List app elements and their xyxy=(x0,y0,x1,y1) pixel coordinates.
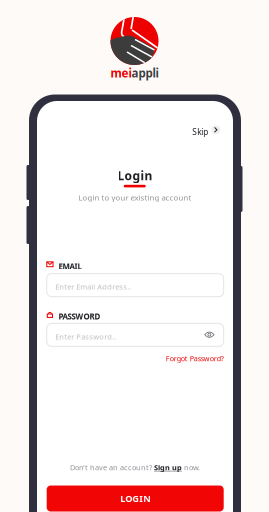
staticText: now. xyxy=(182,462,200,472)
staticText: appli xyxy=(131,65,158,81)
staticText: EMAIL xyxy=(58,261,81,272)
staticText: Sign up xyxy=(154,462,182,472)
button[interactable]: Sign up xyxy=(154,462,182,472)
staticText: Enter Password.. xyxy=(55,331,116,342)
staticText: mei xyxy=(110,65,131,81)
staticText: LOGIN xyxy=(120,492,150,505)
staticText: Login xyxy=(117,167,152,184)
button[interactable]: Skip xyxy=(191,124,220,135)
staticText: Don't have an account? xyxy=(70,462,154,472)
button[interactable]: LOGIN xyxy=(47,485,224,511)
staticText: Forgot Password? xyxy=(166,354,224,363)
button[interactable]: Forgot Password? xyxy=(37,354,224,363)
staticText: Skip xyxy=(192,126,208,137)
staticText: PASSWORD xyxy=(58,311,100,322)
staticText: Login to your existing account xyxy=(78,192,191,203)
staticText: Enter Email Address.. xyxy=(55,282,131,292)
